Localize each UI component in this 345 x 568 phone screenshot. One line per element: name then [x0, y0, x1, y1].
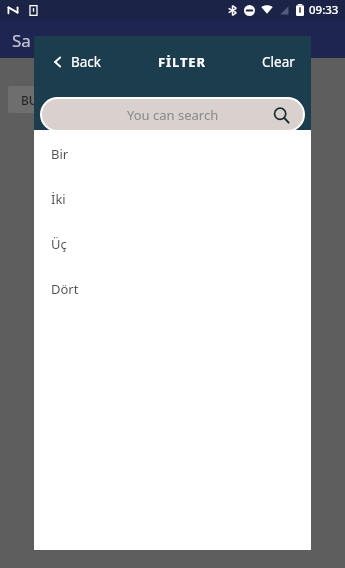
button[interactable]: Dört	[34, 266, 311, 311]
button[interactable]: Clear	[258, 49, 299, 75]
staticText: Back	[71, 53, 102, 71]
button[interactable]: Back	[48, 49, 106, 75]
staticText: 09:33	[309, 2, 339, 18]
staticText: Üç	[51, 235, 67, 253]
staticText: FİLTER	[158, 53, 206, 71]
staticText: You can search	[127, 106, 219, 124]
button[interactable]: Üç	[34, 221, 311, 266]
button[interactable]: İki	[34, 176, 311, 221]
staticText: Clear	[262, 53, 295, 71]
button[interactable]: BUTTON	[8, 86, 82, 113]
button[interactable]: You can search	[42, 99, 303, 130]
staticText: Sa	[12, 29, 31, 52]
staticText: Dört	[51, 280, 79, 298]
staticText: BUTTON	[21, 92, 70, 108]
button[interactable]: Bir	[34, 131, 311, 176]
button[interactable]: Search	[271, 105, 291, 125]
staticText: İki	[51, 190, 66, 208]
staticText: Bir	[51, 145, 69, 163]
